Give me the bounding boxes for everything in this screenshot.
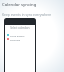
staticText: Personal [10, 38, 21, 41]
staticText: Select calendars [5, 26, 35, 30]
button[interactable]: Personal [7, 37, 35, 41]
button[interactable]: Work events [7, 33, 35, 37]
staticText: Work events [10, 34, 25, 37]
staticText: Keep events in sync everywhere [2, 12, 52, 16]
staticText: Calendar syncing [2, 2, 37, 8]
